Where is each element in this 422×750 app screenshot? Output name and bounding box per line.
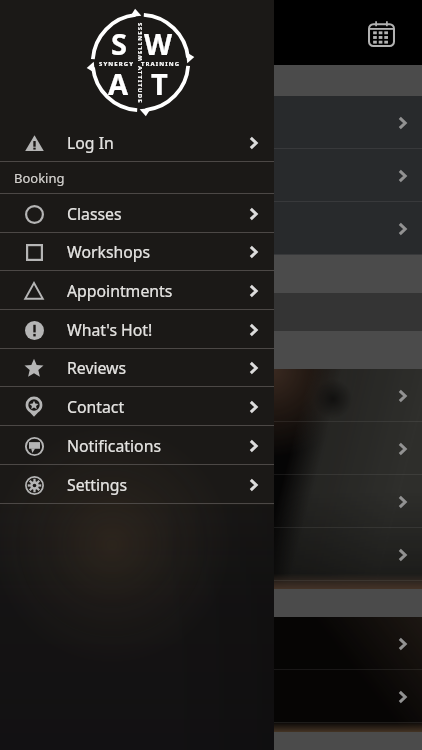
button[interactable]: Appointments xyxy=(0,271,274,310)
staticText: Workshops xyxy=(67,241,151,263)
button[interactable] xyxy=(0,670,422,723)
button[interactable]: Log In xyxy=(0,124,274,162)
button[interactable] xyxy=(0,96,422,149)
staticText: Wednesday, January 13 xyxy=(16,70,191,92)
button[interactable] xyxy=(0,202,422,255)
button[interactable]: Reviews xyxy=(0,349,274,387)
button[interactable] xyxy=(0,369,422,422)
staticText: Contact xyxy=(67,396,125,418)
staticText: Log In xyxy=(67,132,114,154)
button[interactable]: Contact xyxy=(0,387,274,426)
staticText: WELLNESS xyxy=(136,21,144,61)
staticText: ATTITUDE xyxy=(136,66,144,104)
button[interactable]: Notifications xyxy=(0,426,274,465)
staticText: Thursday, January 14 xyxy=(16,263,174,285)
staticText: TRAINING xyxy=(141,60,181,68)
staticText: SYNERGY xyxy=(99,60,135,68)
button[interactable] xyxy=(0,149,422,202)
staticText: What's Hot! xyxy=(67,319,153,341)
button[interactable]: Calendar xyxy=(364,16,398,50)
staticText: Settings xyxy=(67,474,128,496)
button[interactable] xyxy=(0,422,422,475)
button[interactable]: Classes xyxy=(0,194,274,233)
staticText: Reviews xyxy=(67,357,127,379)
staticText: A xyxy=(108,64,129,103)
button[interactable]: What's Hot! xyxy=(0,310,274,349)
staticText: Classes xyxy=(67,203,122,225)
staticText: Booking xyxy=(14,169,65,187)
staticText: S xyxy=(111,24,127,63)
staticText: Notifications xyxy=(67,435,161,457)
button[interactable] xyxy=(0,475,422,528)
button[interactable]: Workshops xyxy=(0,233,274,271)
staticText: T xyxy=(151,64,168,103)
button[interactable]: Settings xyxy=(0,465,274,504)
staticText: W xyxy=(144,24,173,63)
button[interactable] xyxy=(0,528,422,581)
staticText: Friday, January 15 xyxy=(16,339,150,361)
staticText: Appointments xyxy=(67,280,173,302)
button[interactable] xyxy=(0,617,422,670)
